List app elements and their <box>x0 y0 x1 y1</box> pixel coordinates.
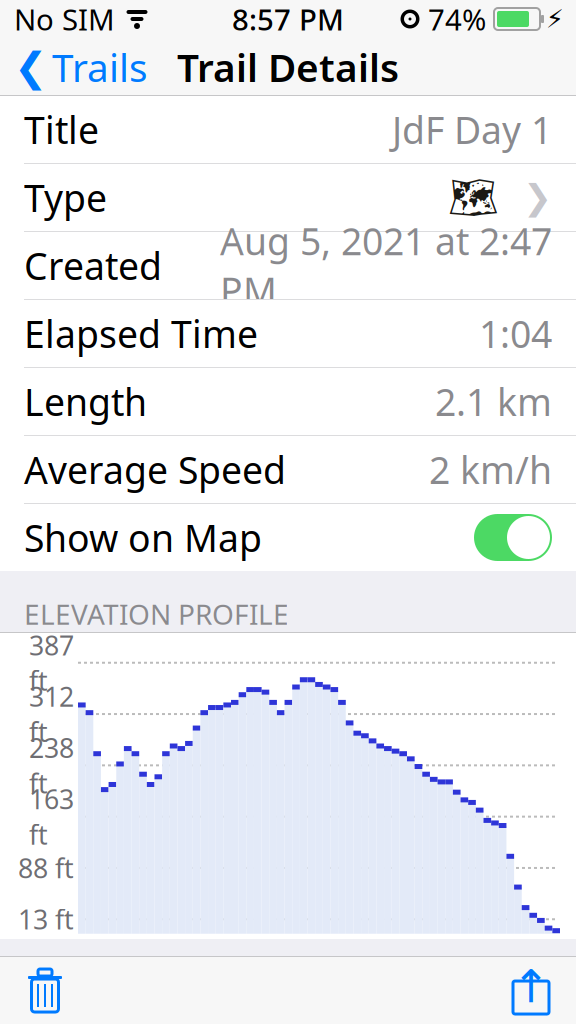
staticText: Length <box>24 377 147 426</box>
staticText: Show on Map <box>24 513 262 562</box>
staticText: 1:04 <box>479 309 552 358</box>
staticText: Created <box>24 241 162 290</box>
staticText: 13 ft <box>18 901 74 937</box>
button[interactable]: ❮ <box>0 38 158 96</box>
staticText: Elapsed Time <box>24 309 258 358</box>
staticText: 🗺 <box>448 175 499 220</box>
staticText: Trail Details <box>177 41 399 93</box>
staticText: 8:57 PM <box>232 0 344 38</box>
staticText: 387 ft <box>29 627 74 698</box>
staticText: JdF Day 1 <box>392 105 552 154</box>
staticText: 2 km/h <box>429 445 552 494</box>
staticText: 2.1 km <box>435 377 552 426</box>
staticText: 312 ft <box>29 679 74 749</box>
staticText: 163 ft <box>29 781 74 852</box>
staticText: ↑ <box>512 961 550 1012</box>
button[interactable]: Share <box>496 960 566 1020</box>
staticText: ELEVATION PROFILE <box>24 595 289 633</box>
staticText: Title <box>24 105 99 154</box>
staticText: Aug 5, 2021 at 2:47 PM <box>220 216 552 315</box>
staticText: 238 ft <box>29 730 74 801</box>
button[interactable]: Delete <box>10 960 80 1020</box>
staticText: Average Speed <box>24 445 286 494</box>
staticText: 74% <box>428 0 486 38</box>
staticText: Trails <box>52 41 148 93</box>
staticText: ⚡︎ <box>546 5 564 33</box>
button[interactable]: Show on Map <box>474 514 552 561</box>
staticText: Type <box>24 173 107 222</box>
button[interactable]: Type <box>0 164 576 232</box>
staticText: ❮ <box>14 44 48 90</box>
staticText: 88 ft <box>18 850 74 886</box>
staticText: No SIM <box>14 0 115 38</box>
staticText: ❯ <box>523 178 552 217</box>
